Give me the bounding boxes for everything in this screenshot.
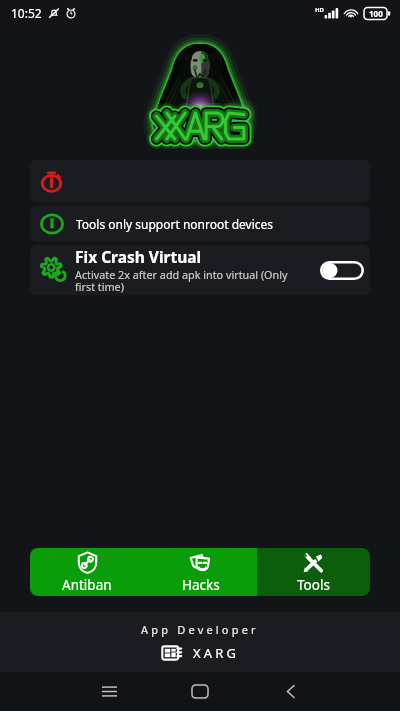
- staticText: Hacks: [182, 576, 220, 594]
- button[interactable]: Recents: [87, 672, 131, 711]
- staticText: App Developer: [141, 622, 259, 637]
- button[interactable]: Tools only support nonroot devices: [30, 206, 370, 242]
- staticText: Tools only support nonroot devices: [76, 216, 274, 232]
- staticText: HD: [315, 6, 324, 14]
- staticText: Tools: [297, 576, 330, 594]
- staticText: 10:52: [11, 5, 42, 21]
- button[interactable]: Timer: [30, 160, 370, 202]
- staticText: Fix Crash Virtual: [75, 246, 202, 267]
- button[interactable]: Fix Crash Virtual: [30, 245, 370, 295]
- staticText: 100: [369, 8, 383, 19]
- staticText: Activate 2x after add apk into virtual (…: [75, 267, 307, 294]
- button[interactable]: Antiban: [30, 548, 144, 596]
- button[interactable]: Tools: [257, 548, 370, 596]
- button[interactable]: Fix Crash Virtual toggle: [320, 261, 364, 280]
- staticText: XARG: [193, 644, 240, 662]
- button[interactable]: Hacks: [144, 548, 257, 596]
- staticText: Antiban: [62, 576, 112, 594]
- button[interactable]: Home: [178, 672, 222, 711]
- button[interactable]: Back: [269, 672, 313, 711]
